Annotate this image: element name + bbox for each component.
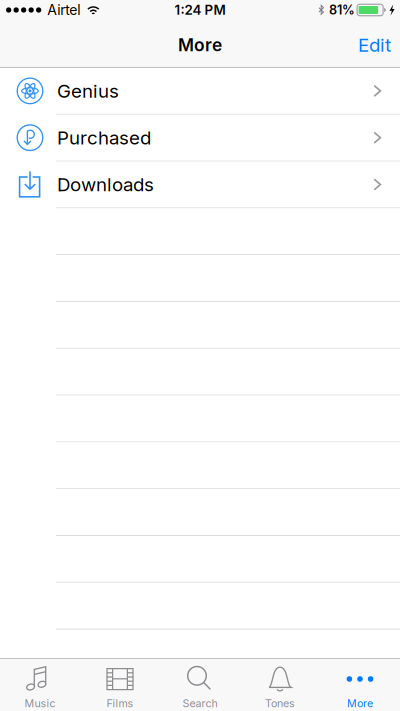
staticText: 1:24 PM — [174, 2, 225, 18]
button[interactable]: Music — [0, 659, 80, 711]
button[interactable]: Films — [80, 659, 160, 711]
staticText: Search — [182, 697, 217, 710]
staticText: Downloads — [57, 173, 154, 196]
button[interactable]: Purchased — [0, 115, 400, 162]
staticText: Edit — [358, 34, 391, 56]
button[interactable]: Downloads — [0, 162, 400, 208]
staticText: Airtel — [47, 1, 80, 18]
button[interactable]: Tones — [240, 659, 320, 711]
staticText: More — [347, 697, 373, 710]
staticText: Music — [24, 697, 55, 710]
button[interactable]: Genius — [0, 68, 400, 115]
staticText: 81% — [329, 2, 355, 18]
staticText: More — [178, 34, 222, 55]
button[interactable]: Edit — [346, 21, 400, 66]
staticText: Purchased — [57, 126, 151, 149]
staticText: Films — [106, 697, 133, 710]
button[interactable]: Search — [160, 659, 240, 711]
button[interactable]: More — [320, 659, 400, 711]
staticText: Genius — [57, 80, 119, 102]
staticText: Tones — [265, 697, 295, 710]
